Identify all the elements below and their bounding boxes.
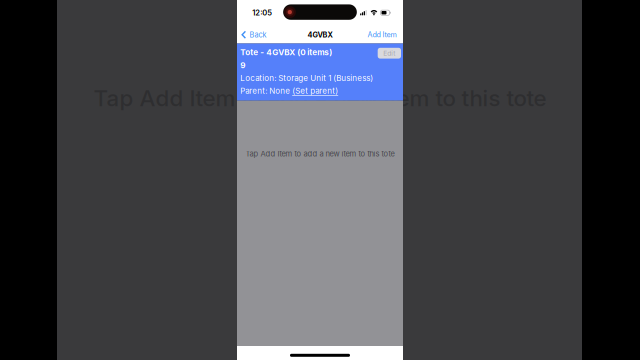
staticText: Tote - 4GVBX (0 items) — [240, 47, 332, 57]
staticText: Tap Add Item to add a new item to this t… — [93, 84, 546, 112]
staticText: (Set parent) — [292, 86, 338, 96]
button[interactable]: Edit — [378, 48, 401, 59]
staticText: 12:05 — [252, 8, 272, 17]
staticText: 4GVBX — [307, 30, 332, 39]
staticText: Location: Storage Unit 1 (Business) — [240, 73, 373, 83]
staticText: 9 — [240, 60, 245, 70]
staticText: Tap Add Item to add a new item to this t… — [245, 149, 394, 158]
staticText: Back — [249, 30, 266, 39]
staticText: Edit — [383, 49, 395, 57]
staticText: Parent: None — [240, 86, 292, 96]
button[interactable]: Add Item — [362, 26, 403, 43]
staticText: Add Item — [367, 30, 396, 39]
button[interactable]: Back — [237, 26, 271, 43]
button[interactable]: (Set parent) — [292, 86, 338, 96]
